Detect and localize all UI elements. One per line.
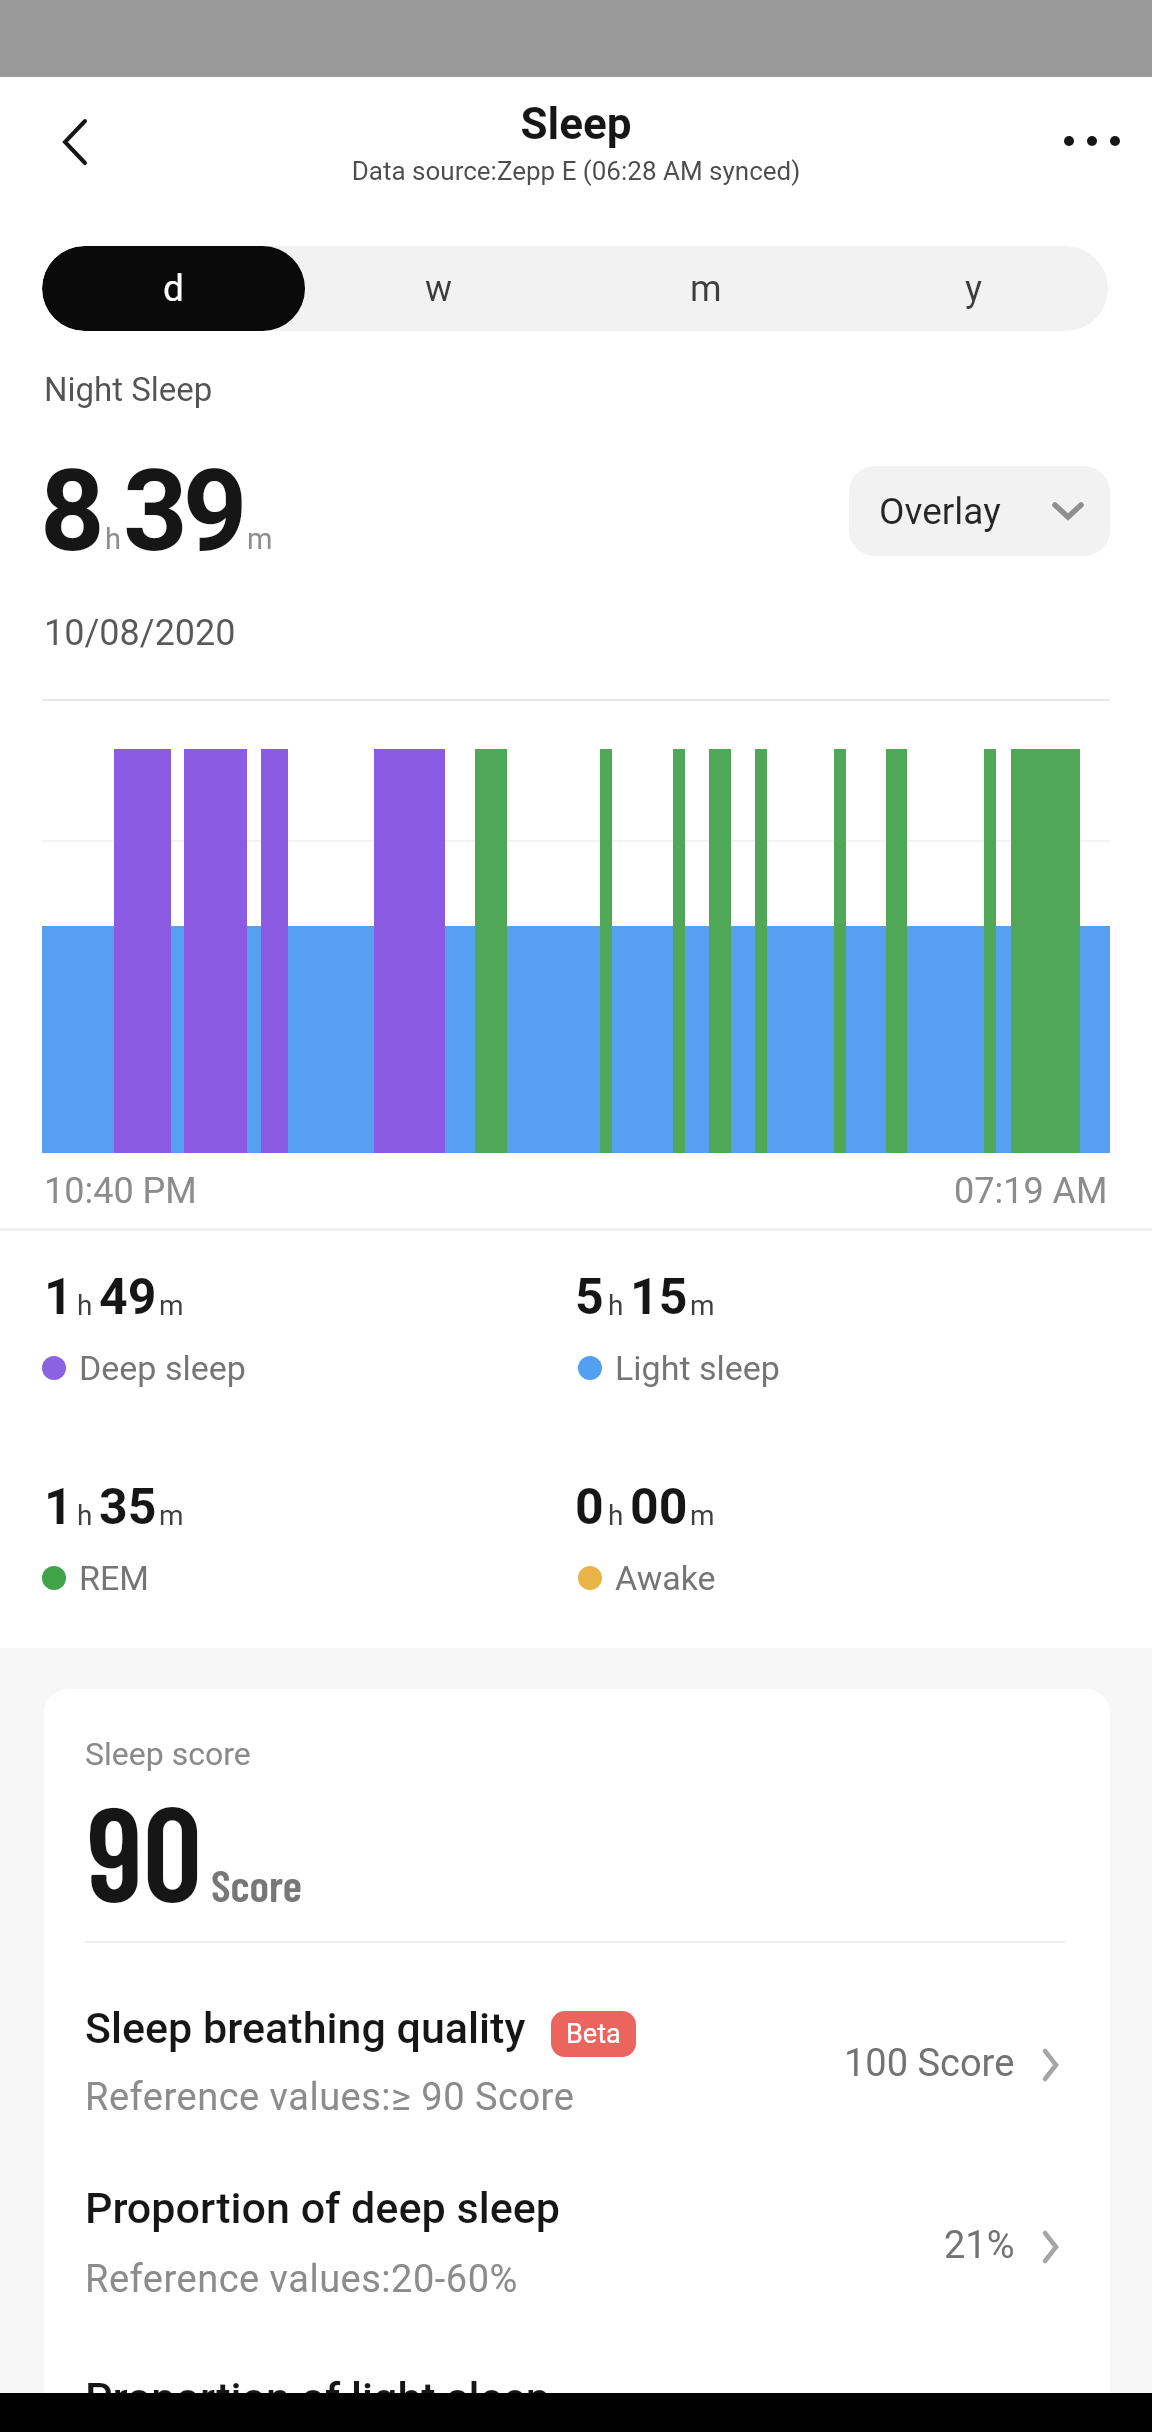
staticText: y (965, 268, 983, 310)
staticText: 21% (944, 2223, 1015, 2268)
button[interactable]: Overlay (849, 466, 1110, 556)
staticText: Reference values:≥ 90 Score (85, 2075, 575, 2120)
staticText: 07:19 AM (954, 1170, 1108, 1212)
staticText: h (608, 1289, 624, 1322)
staticText: Reference values:20-60% (85, 2257, 518, 2302)
staticText: 00 (630, 1478, 688, 1537)
staticText: Overlay (879, 490, 1001, 533)
staticText: m (159, 1499, 184, 1532)
staticText: Awake (615, 1558, 716, 1598)
staticText: 49 (99, 1268, 157, 1327)
staticText: 0 (575, 1478, 604, 1537)
staticText: h (77, 1499, 93, 1532)
staticText: Proportion of deep sleep (85, 2183, 560, 2233)
button[interactable]: m (572, 246, 840, 331)
staticText: Deep sleep (79, 1348, 246, 1388)
staticText: 5 (575, 1268, 604, 1327)
staticText: 8 (40, 445, 105, 577)
staticText: 100 Score (844, 2041, 1015, 2086)
staticText: 15 (630, 1268, 688, 1327)
staticText: 39 (123, 445, 243, 577)
staticText: h (105, 522, 121, 556)
staticText: h (608, 1499, 624, 1532)
staticText: d (163, 267, 184, 310)
button[interactable]: y (840, 246, 1108, 331)
staticText: Data source:Zepp E (06:28 AM synced) (0, 156, 1152, 186)
staticText: m (690, 1499, 715, 1532)
staticText: m (159, 1289, 184, 1322)
staticText: Light sleep (615, 1348, 780, 1388)
staticText: 90 (87, 1770, 203, 1928)
staticText: 1 (44, 1268, 73, 1327)
button[interactable]: Proportion of deep sleep (44, 2169, 1110, 2299)
staticText: Score (211, 1857, 302, 1911)
staticText: Sleep score (85, 1735, 251, 1773)
staticText: m (690, 1289, 715, 1322)
button[interactable] (48, 104, 104, 174)
staticText: 1 (44, 1478, 73, 1537)
staticText: Night Sleep (44, 370, 213, 409)
staticText: m (247, 522, 273, 556)
staticText: 10:40 PM (44, 1170, 197, 1212)
staticText: Sleep (0, 98, 1152, 150)
staticText: Proportion of light sleep (85, 2373, 550, 2423)
staticText: w (425, 268, 453, 310)
staticText: 10/08/2020 (44, 612, 236, 654)
staticText: h (77, 1289, 93, 1322)
staticText: Beta (566, 2018, 621, 2050)
staticText: REM (79, 1558, 149, 1598)
staticText: 35 (99, 1478, 157, 1537)
staticText: m (690, 268, 722, 310)
button[interactable] (1046, 118, 1136, 164)
button[interactable]: Sleep breathing quality (44, 1989, 1110, 2119)
button[interactable]: d (42, 246, 305, 331)
staticText: Sleep breathing quality (85, 2003, 526, 2053)
button[interactable]: w (305, 246, 572, 331)
